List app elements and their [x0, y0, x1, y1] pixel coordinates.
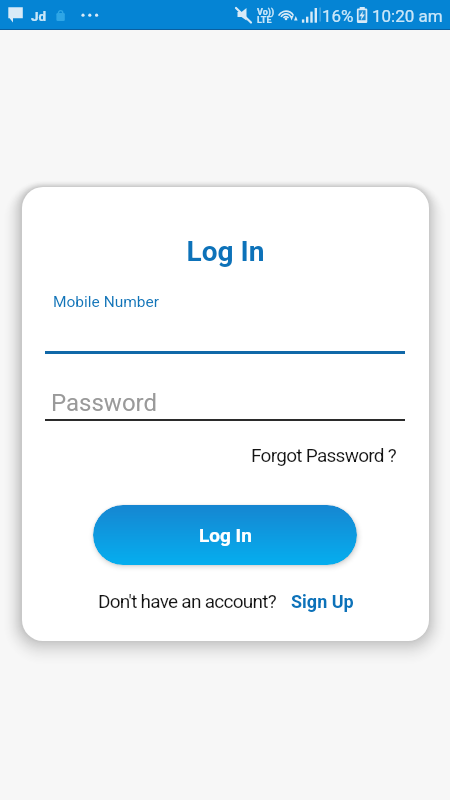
button[interactable]: Forgot Password ?: [245, 440, 403, 470]
staticText: Log In: [199, 524, 252, 546]
staticText: Log In: [22, 235, 429, 268]
staticText: Jd: [31, 8, 47, 24]
button[interactable]: Sign Up: [291, 591, 354, 612]
staticText: Password: [51, 389, 158, 417]
staticText: Mobile Number: [53, 293, 160, 311]
staticText: Vo)): [257, 7, 275, 18]
staticText: 16%: [322, 6, 354, 26]
button[interactable]: Log In: [93, 505, 357, 565]
staticText: Forgot Password ?: [251, 444, 397, 466]
staticText: LTE: [257, 15, 272, 26]
staticText: 10:20 am: [372, 6, 443, 26]
staticText: Don't have an account?: [98, 590, 276, 612]
staticText: Sign Up: [291, 591, 354, 612]
